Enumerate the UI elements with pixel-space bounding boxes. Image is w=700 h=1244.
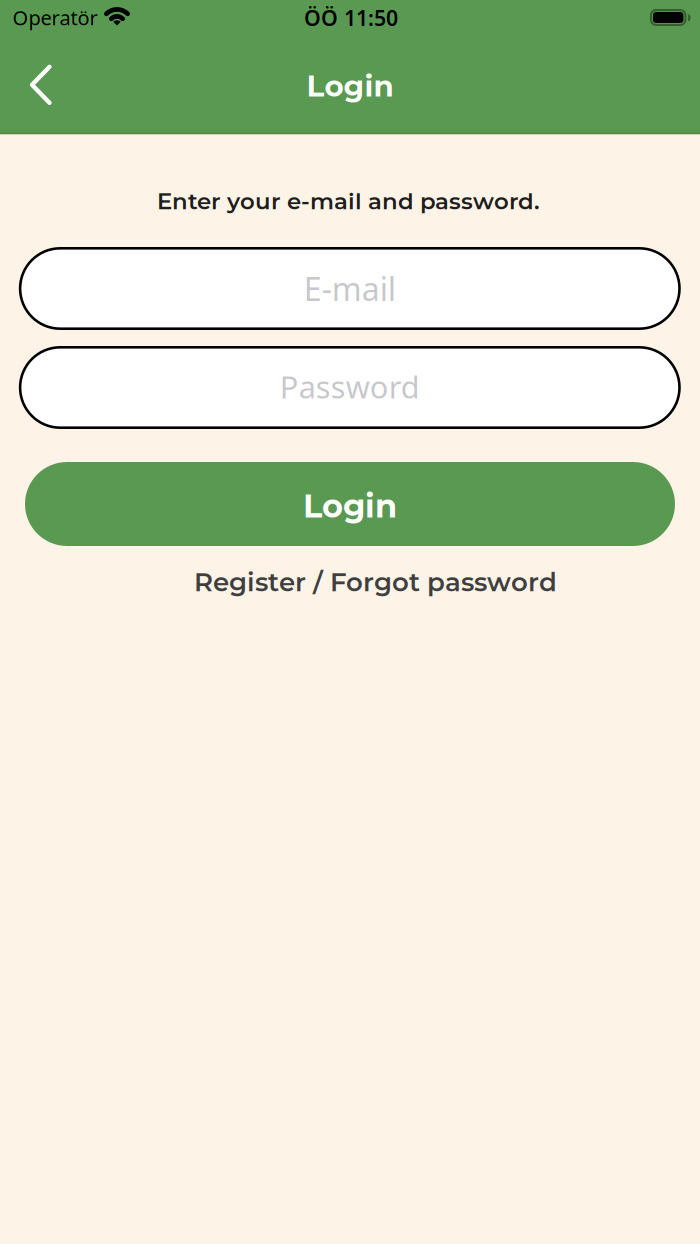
staticText: E-mail (304, 267, 396, 310)
staticText: Password (280, 366, 420, 407)
staticText: Register / Forgot password (194, 566, 557, 598)
staticText: Login (306, 68, 393, 104)
button[interactable]: E-mail (19, 247, 681, 330)
button[interactable]: Login (25, 462, 675, 546)
staticText: Login (303, 486, 397, 525)
staticText: Enter your e-mail and password. (157, 187, 540, 215)
button[interactable]: Password (19, 346, 681, 429)
staticText: Operatör (12, 4, 97, 31)
button[interactable]: Back (10, 55, 70, 115)
staticText: ÖÖ 11:50 (304, 4, 398, 32)
button[interactable]: Register / Forgot password (194, 566, 557, 598)
